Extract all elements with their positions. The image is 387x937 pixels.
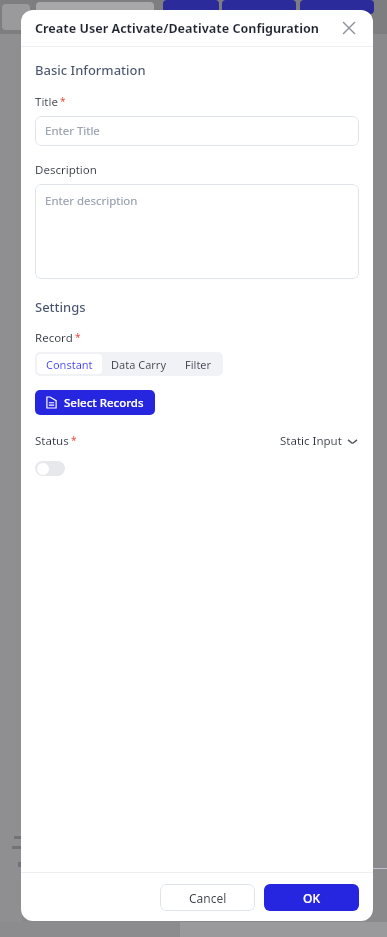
button[interactable]: OK: [264, 884, 359, 911]
button[interactable]: Constant: [37, 354, 102, 374]
staticText: Select Records: [64, 395, 144, 411]
staticText: Create User Activate/Deativate Configura…: [35, 20, 319, 37]
staticText: Status: [35, 433, 69, 449]
staticText: Description: [35, 162, 97, 178]
button[interactable]: Select Records: [35, 390, 155, 415]
staticText: Settings: [35, 298, 86, 316]
button[interactable]: Enter Title: [35, 116, 359, 146]
button[interactable]: Close: [337, 16, 361, 40]
button[interactable]: Enter description: [35, 184, 359, 279]
staticText: Enter description: [45, 193, 138, 209]
staticText: *: [71, 433, 77, 447]
staticText: Data Carry: [111, 357, 167, 372]
staticText: Title: [35, 94, 58, 110]
staticText: Filter: [185, 357, 212, 372]
button[interactable]: Cancel: [160, 884, 255, 911]
button[interactable]: Data Carry: [102, 354, 176, 374]
staticText: Record: [35, 330, 73, 346]
staticText: *: [75, 330, 81, 344]
button[interactable]: Status toggle: [35, 461, 65, 476]
staticText: Constant: [46, 357, 93, 372]
staticText: Enter Title: [45, 123, 100, 139]
button[interactable]: Static Input: [278, 431, 359, 451]
staticText: Cancel: [189, 890, 227, 906]
button[interactable]: Filter: [176, 354, 221, 374]
staticText: Basic Information: [35, 61, 146, 79]
staticText: OK: [303, 890, 320, 906]
staticText: *: [60, 94, 66, 108]
staticText: Static Input: [280, 433, 342, 449]
